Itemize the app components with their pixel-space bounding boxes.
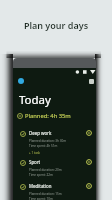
button[interactable]: Start timer [86, 159, 92, 165]
staticText: + 1 task [29, 151, 40, 155]
staticText: Planned: 4h 35m [25, 112, 71, 120]
button[interactable]: Start timer [86, 130, 92, 136]
staticText: Deep work [29, 130, 52, 136]
staticText: Sport [29, 159, 41, 165]
staticText: Planned duration: 20m [29, 168, 62, 172]
staticText: Time spent: 10m [29, 197, 53, 200]
staticText: Time spent: 22m [29, 173, 53, 177]
staticText: Today [19, 92, 51, 108]
button[interactable]: Meditation [20, 183, 92, 200]
staticText: Meditation [29, 183, 52, 189]
staticText: Time spent: 4h 51m [29, 144, 58, 148]
button[interactable]: Sport [20, 159, 92, 177]
staticText: Planned duration: 3h 30m [29, 139, 67, 143]
button[interactable]: Deep work [20, 130, 92, 155]
staticText: Planned duration: 15m [29, 192, 62, 196]
button[interactable]: Profile [18, 78, 24, 84]
button[interactable]: Calendar [89, 79, 94, 84]
button[interactable]: Planned: 4h 35m [17, 112, 71, 120]
staticText: Plan your days [0, 19, 112, 31]
button[interactable]: Start timer [86, 183, 92, 189]
